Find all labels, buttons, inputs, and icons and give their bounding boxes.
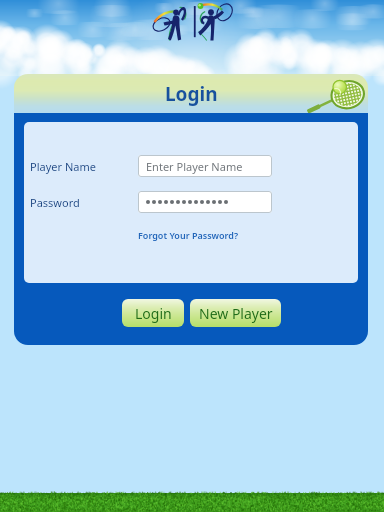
staticText: Enter Player Name [146, 159, 243, 174]
staticText: Forgot Your Password? [138, 229, 239, 241]
staticText: New Player [199, 304, 273, 323]
button[interactable] [138, 191, 272, 213]
button[interactable]: Forgot Your Password? [138, 229, 239, 241]
button[interactable]: Enter Player Name [138, 155, 272, 177]
staticText: Password [30, 195, 80, 210]
staticText: Login [165, 81, 218, 107]
staticText: Login [135, 304, 172, 323]
staticText: Player Name [30, 159, 96, 174]
button[interactable]: New Player [190, 299, 281, 327]
button[interactable]: Login [122, 299, 184, 327]
